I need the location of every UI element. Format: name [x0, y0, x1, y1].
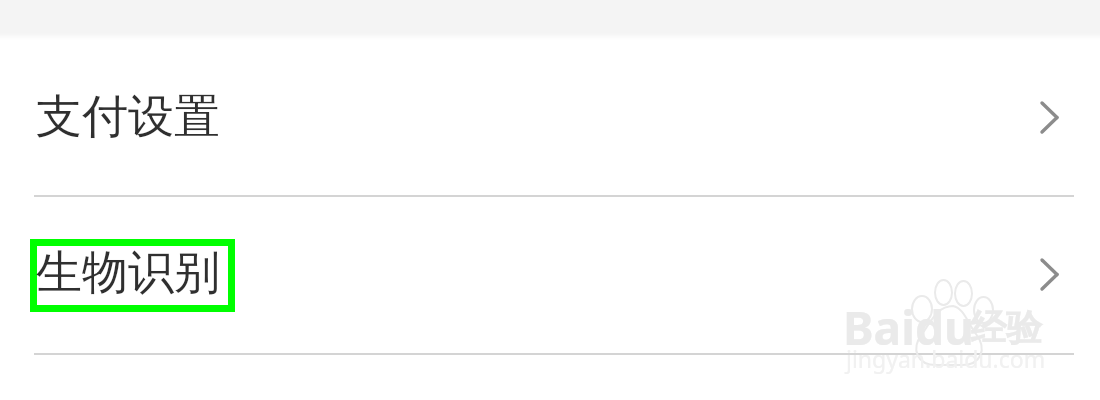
staticText: jingyan.baidu.com [846, 343, 1046, 374]
other: Open 支付设置 [1041, 102, 1058, 133]
staticText: Baidu [843, 296, 974, 359]
button[interactable]: 支付设置 [0, 40, 1100, 195]
other: Open 生物识别 [1041, 259, 1058, 290]
staticText: 生物识别 [36, 244, 220, 302]
staticText: 支付设置 [36, 88, 220, 146]
button[interactable]: 生物识别 [0, 196, 1100, 353]
staticText: 经验 [970, 305, 1042, 350]
